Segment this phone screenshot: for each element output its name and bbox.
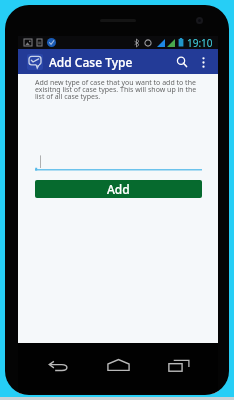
staticText: 19:10 [187,36,213,49]
staticText: Add new type of case that you want to ad… [35,78,201,102]
staticText: Add Case Type [49,54,133,70]
button[interactable]: Home [104,353,132,377]
button[interactable]: More options [193,52,213,72]
button[interactable]: Back [46,353,70,377]
button[interactable] [35,155,202,171]
button[interactable]: Recent apps [166,352,192,378]
button[interactable]: Add [35,180,202,198]
button[interactable]: App logo [27,54,43,70]
staticText: Add [107,181,130,197]
button[interactable]: Search [171,51,193,73]
